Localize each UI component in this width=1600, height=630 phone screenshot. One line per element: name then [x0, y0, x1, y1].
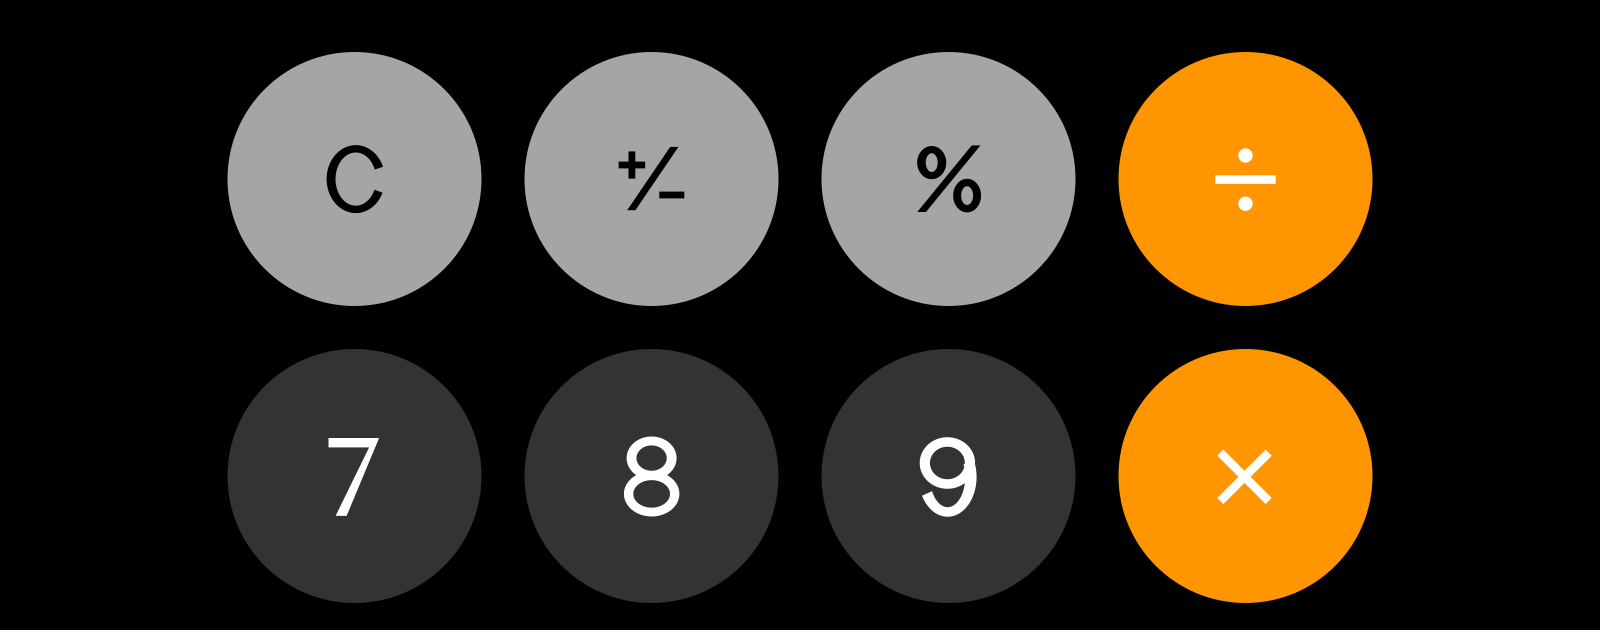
button[interactable]: 9 [821, 349, 1075, 603]
button[interactable]: Plus minus [524, 52, 778, 306]
button[interactable]: Clear [227, 52, 481, 306]
button[interactable]: Multiply [1118, 349, 1372, 603]
button[interactable]: Percent [821, 52, 1075, 306]
button[interactable]: Divide [1118, 52, 1372, 306]
button[interactable]: 7 [227, 349, 481, 603]
button[interactable]: 8 [524, 349, 778, 603]
